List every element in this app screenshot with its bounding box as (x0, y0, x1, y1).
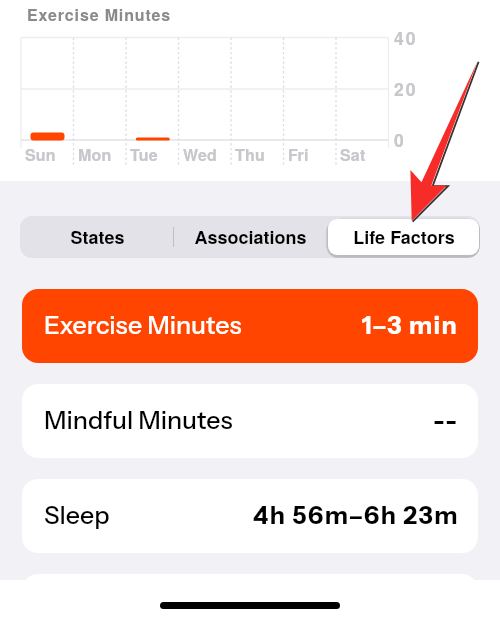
staticText: Exercise Minutes (27, 3, 172, 26)
button[interactable]: Steps (22, 574, 478, 621)
staticText: Sleep (44, 500, 110, 531)
staticText: -- (433, 405, 459, 435)
button[interactable]: Exercise Minutes (22, 289, 478, 363)
staticText: 20 (394, 76, 418, 101)
staticText: Thu (235, 143, 265, 166)
staticText: 4h 56m–6h 23m (253, 500, 459, 530)
staticText: Associations (194, 224, 307, 250)
staticText: Life Factors (353, 224, 455, 250)
button[interactable]: Associations (175, 219, 326, 255)
staticText: States (70, 224, 125, 250)
staticText: Sat (340, 143, 366, 166)
staticText: Tue (130, 143, 158, 166)
button[interactable]: Sleep (22, 479, 478, 553)
button[interactable]: States (21, 219, 173, 255)
button[interactable]: Mindful Minutes (22, 384, 478, 458)
staticText: Fri (288, 143, 309, 166)
staticText: Sun (25, 143, 56, 166)
staticText: 40 (394, 25, 418, 50)
staticText: 0 (394, 127, 406, 152)
staticText: Mon (78, 143, 112, 166)
staticText: Mindful Minutes (44, 405, 233, 436)
button[interactable]: Life Factors (328, 219, 479, 255)
staticText: Exercise Minutes (44, 310, 242, 341)
staticText: Wed (183, 143, 217, 166)
staticText: 1–3 min (362, 310, 459, 340)
